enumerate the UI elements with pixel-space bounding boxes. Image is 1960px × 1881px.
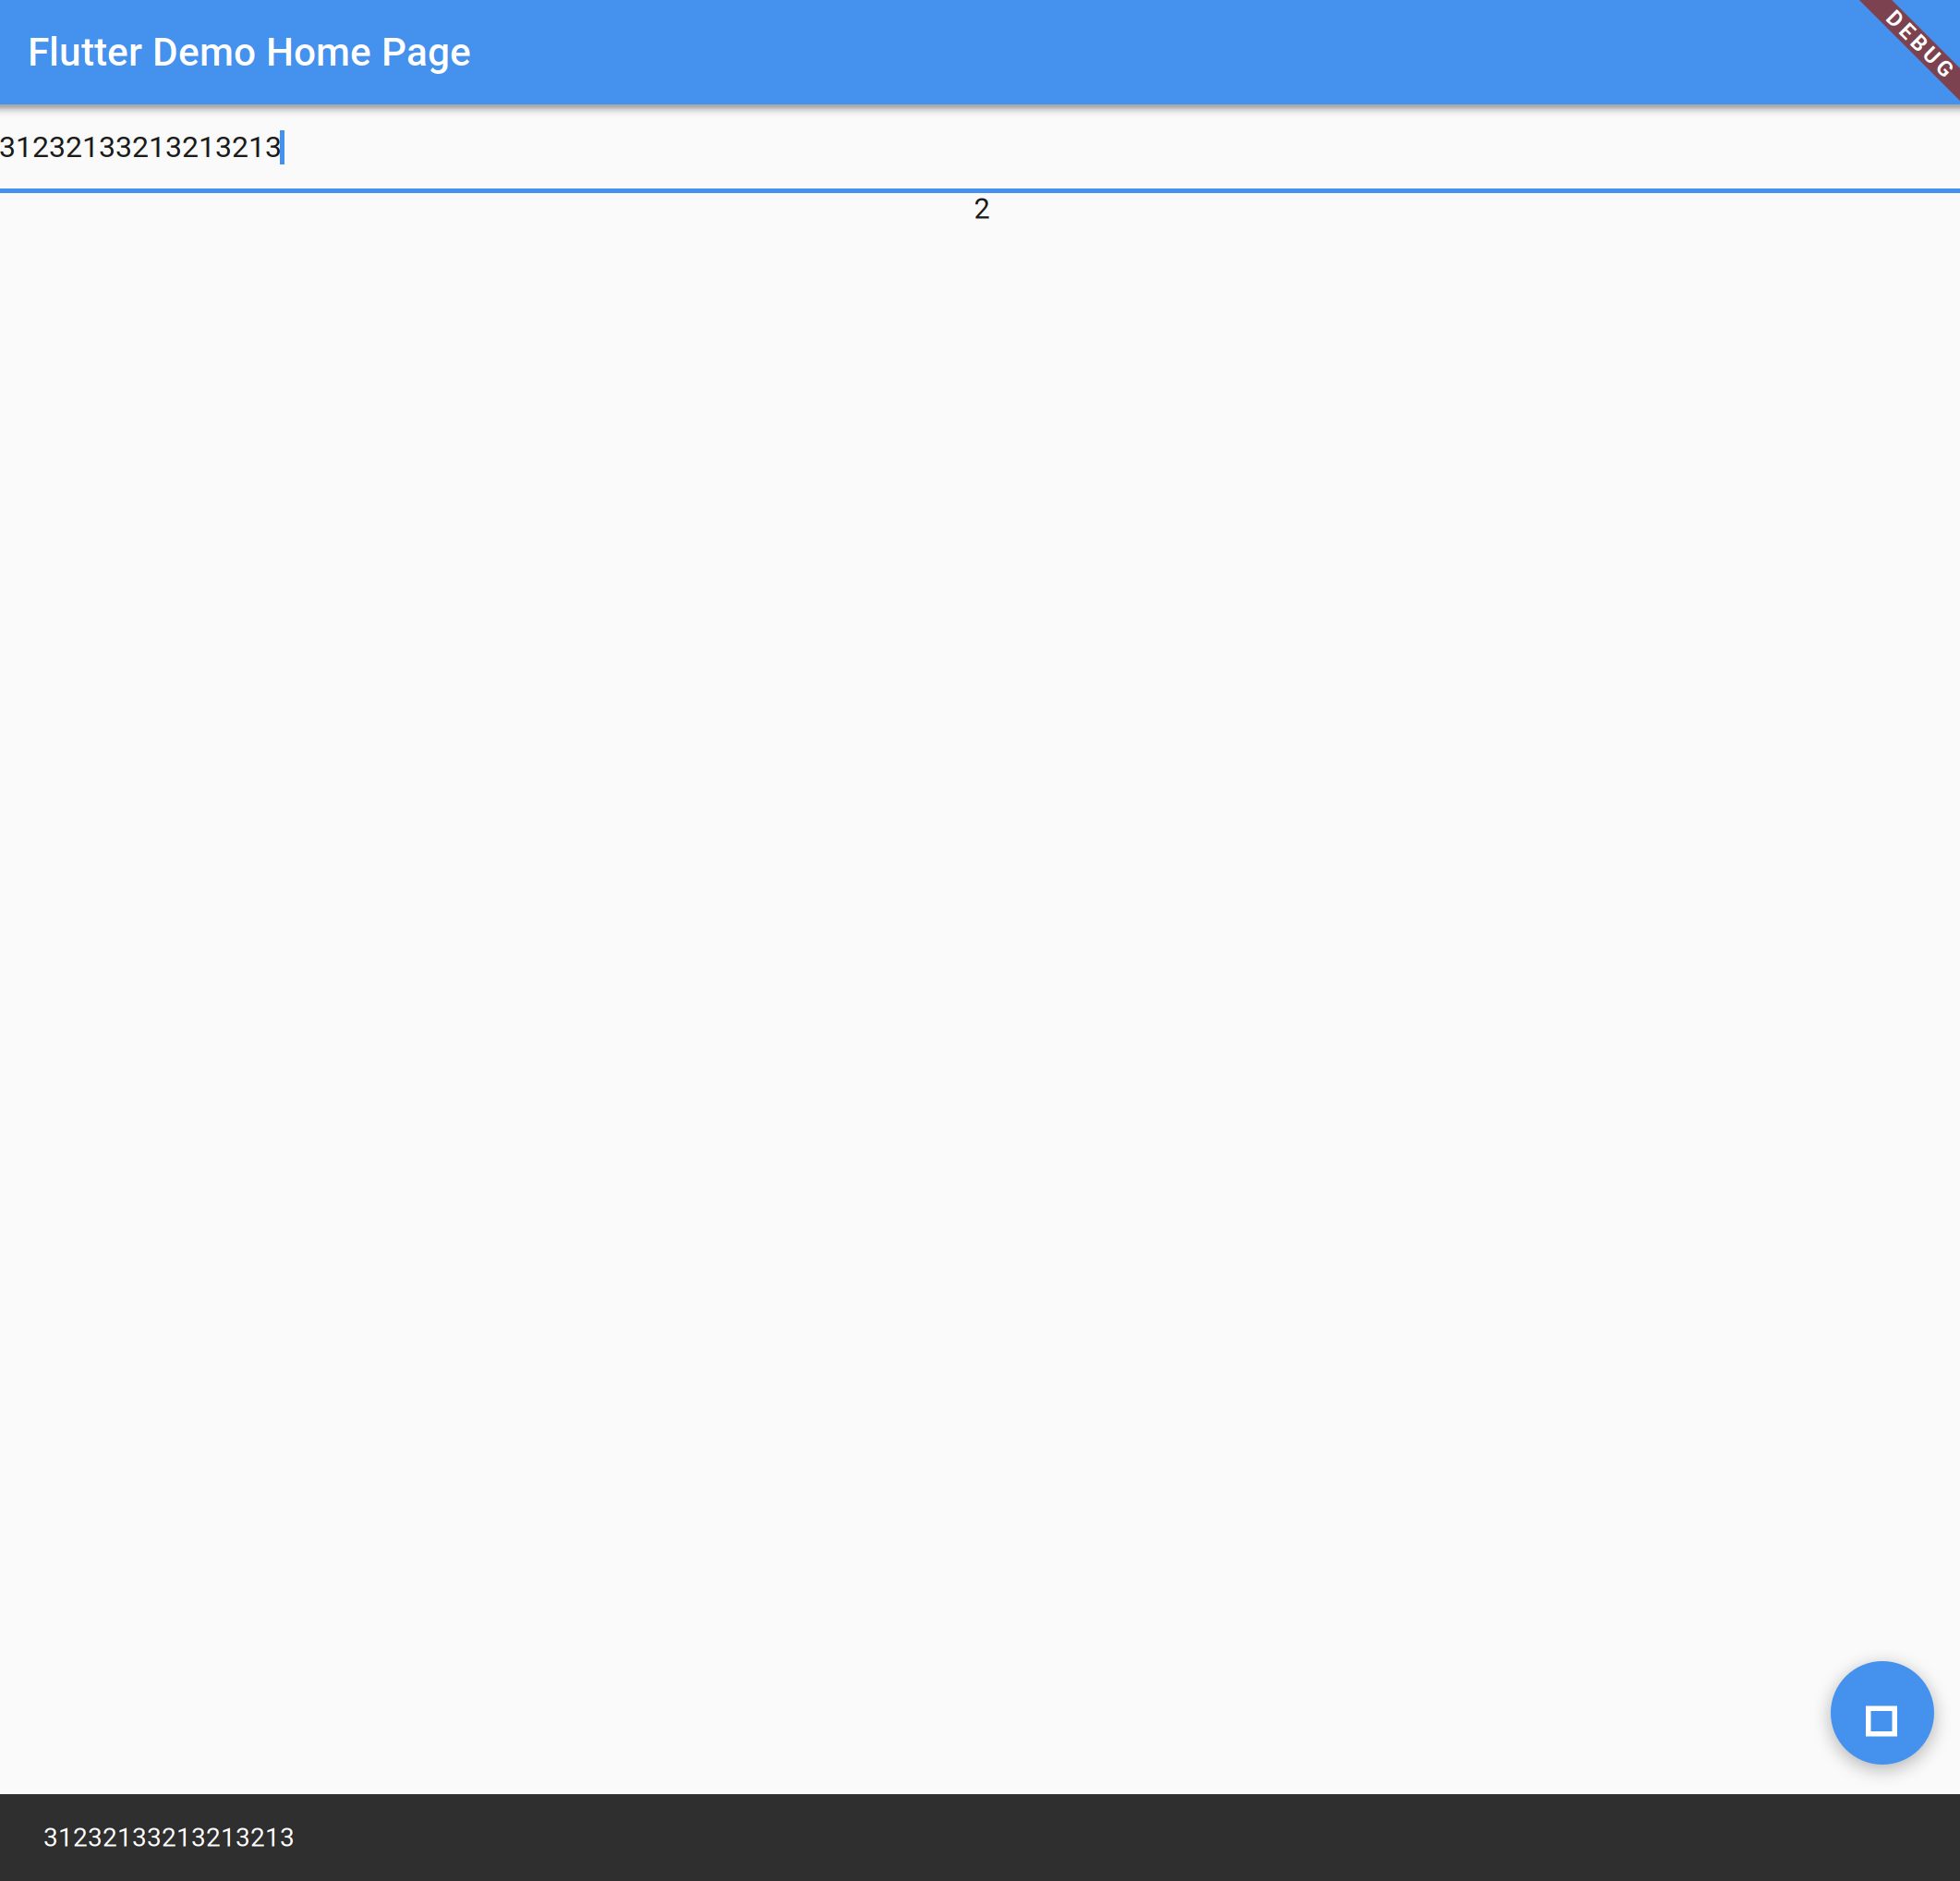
staticText: 31232133213213213 [43,1822,295,1853]
staticText: 31232133213213213 [0,130,282,164]
staticText: E [1896,32,1908,56]
staticText: G [1947,32,1960,56]
staticText: 2 [974,192,990,225]
button[interactable]: Increment [1831,1661,1934,1765]
staticText: U [1929,32,1943,56]
staticText: B [1912,32,1925,56]
staticText: Flutter Demo Home Page [28,29,471,75]
